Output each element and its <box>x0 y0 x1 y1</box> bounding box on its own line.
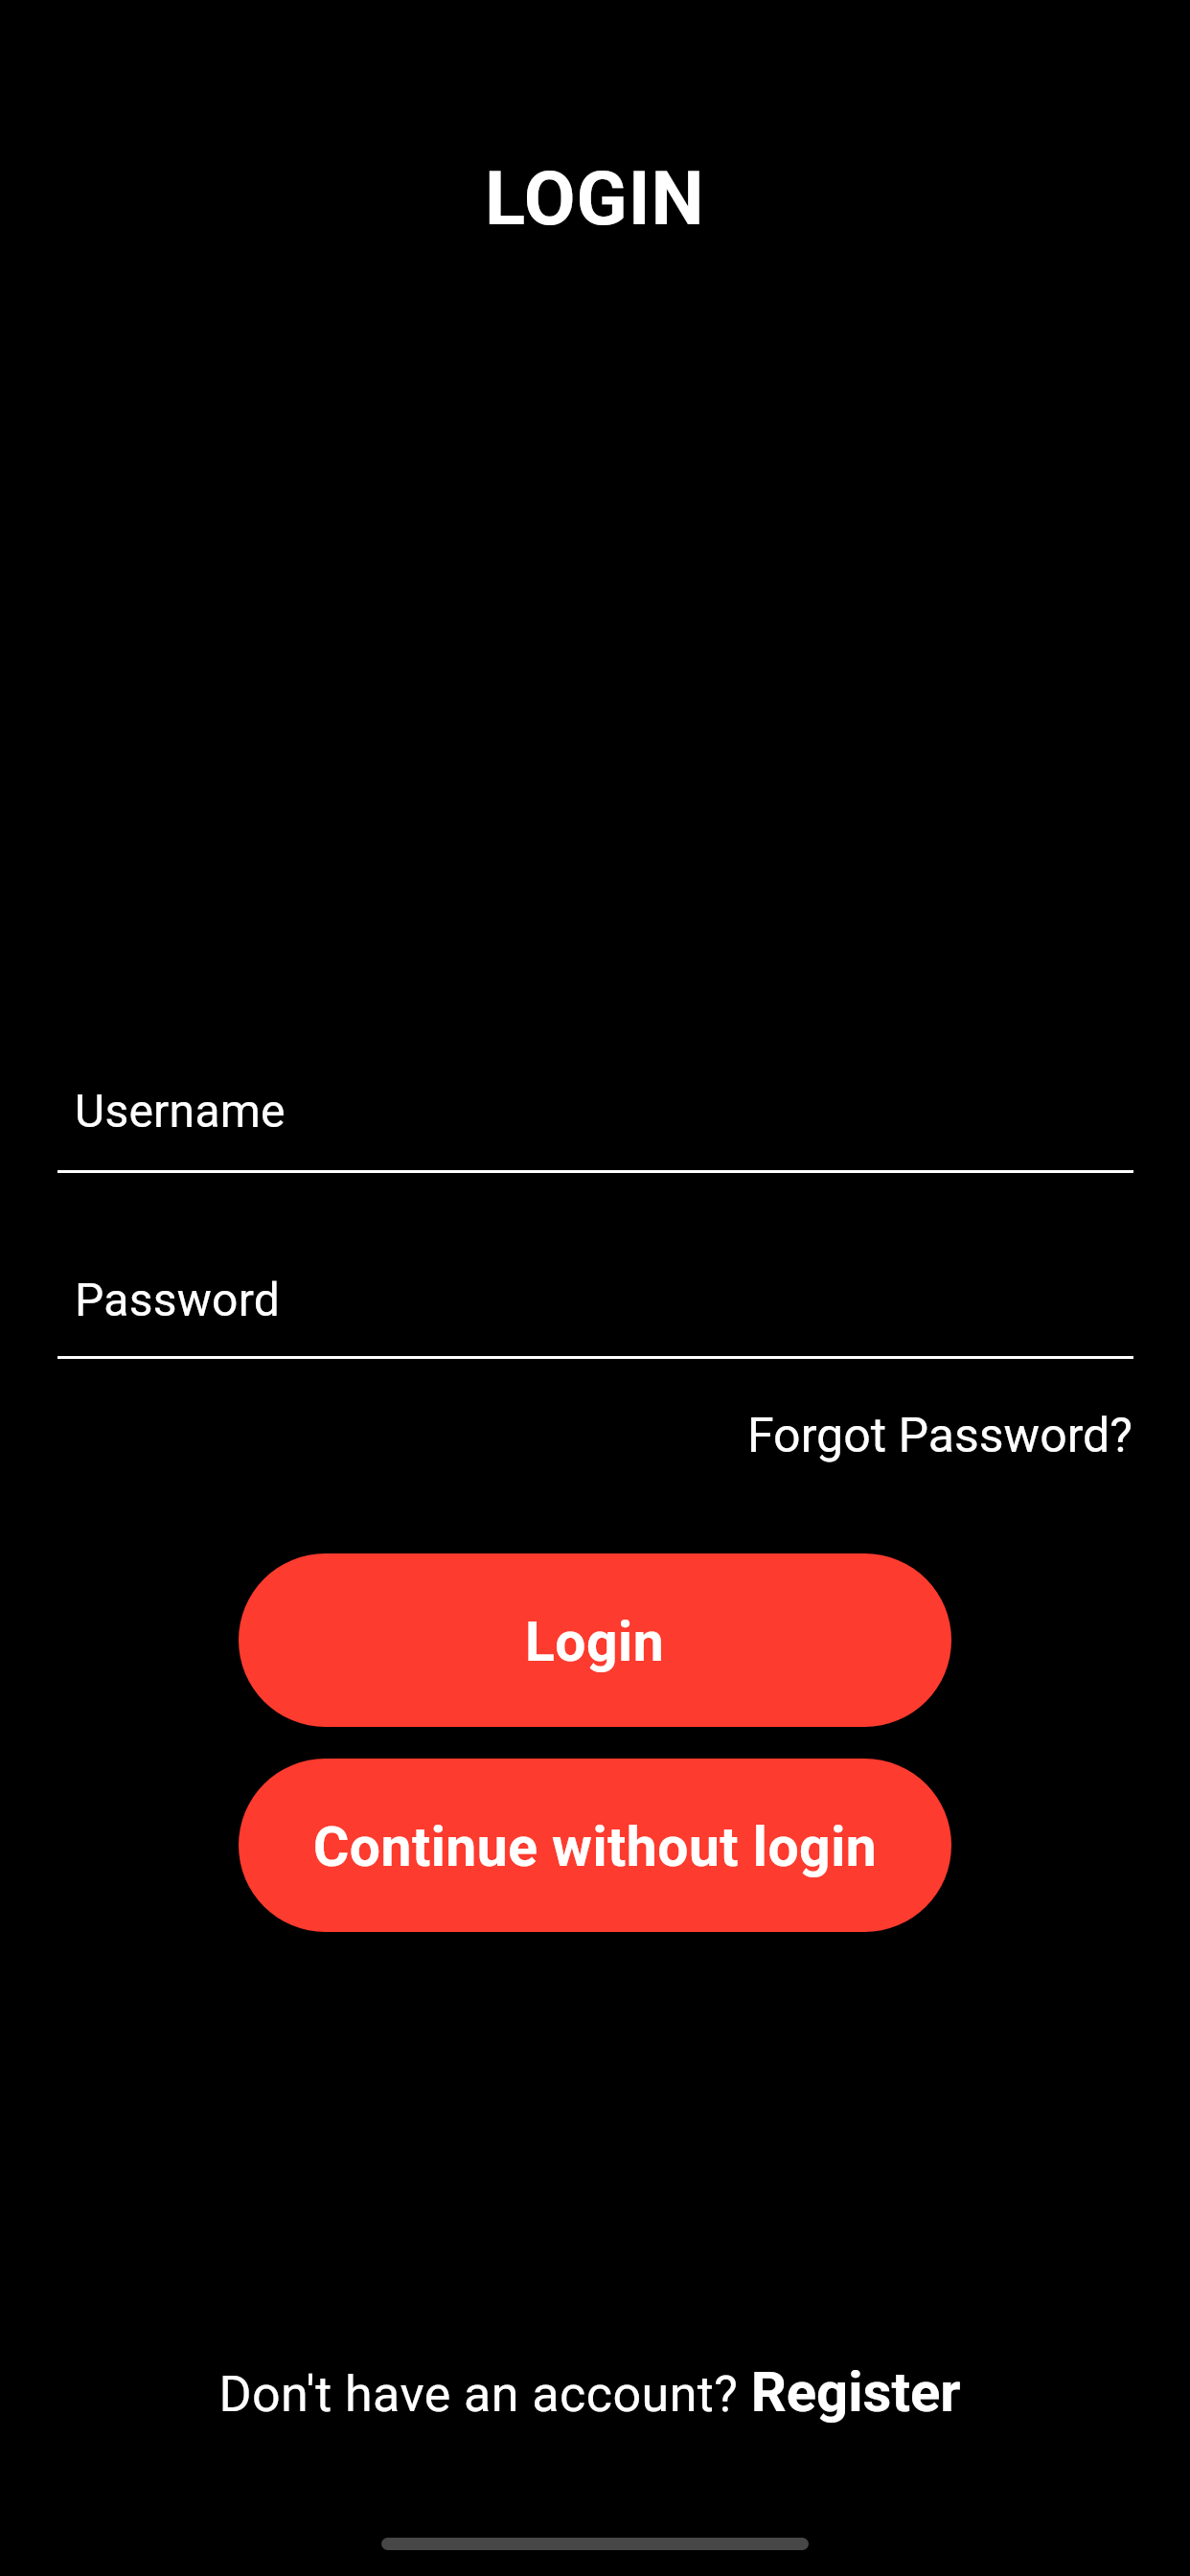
staticText: Login <box>525 1610 665 1674</box>
button[interactable]: Forgot Password? <box>745 1394 1134 1478</box>
button[interactable]: Don't have an account? Register <box>213 2346 967 2438</box>
staticText: LOGIN <box>485 155 705 242</box>
staticText: Don't have an account? Register <box>218 2359 961 2425</box>
button[interactable]: Password <box>57 1248 1133 1359</box>
staticText: Continue without login <box>313 1815 878 1879</box>
button[interactable]: Continue without login <box>239 1759 951 1932</box>
staticText: Password <box>75 1273 281 1326</box>
button[interactable]: Login <box>239 1553 951 1727</box>
staticText: Username <box>75 1084 286 1138</box>
staticText: Forgot Password? <box>747 1408 1133 1464</box>
button[interactable]: Username <box>57 1059 1133 1173</box>
